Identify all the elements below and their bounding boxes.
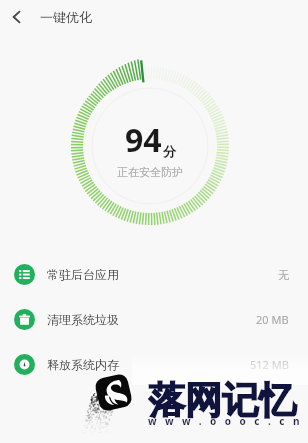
staticText: 94 bbox=[125, 118, 162, 162]
staticText: 512 MB bbox=[250, 357, 289, 372]
staticText: 清理系统垃圾 bbox=[47, 312, 256, 327]
staticText: 落网记忆 bbox=[148, 377, 296, 424]
button[interactable]: 清理系统垃圾 bbox=[0, 297, 308, 342]
button[interactable]: 常驻后台应用 bbox=[0, 252, 308, 297]
staticText: 分 bbox=[163, 143, 176, 159]
staticText: 释放系统内存 bbox=[47, 357, 250, 372]
staticText: 常驻后台应用 bbox=[47, 267, 278, 282]
staticText: 无 bbox=[278, 268, 289, 282]
staticText: 正在安全防护 bbox=[117, 165, 183, 179]
staticText: 20 MB bbox=[256, 312, 289, 327]
button[interactable]: 释放系统内存 bbox=[0, 342, 308, 387]
staticText: www.oooc.cn bbox=[148, 414, 308, 428]
staticText: 一键优化 bbox=[40, 9, 92, 25]
button[interactable]: Back bbox=[0, 0, 34, 33]
